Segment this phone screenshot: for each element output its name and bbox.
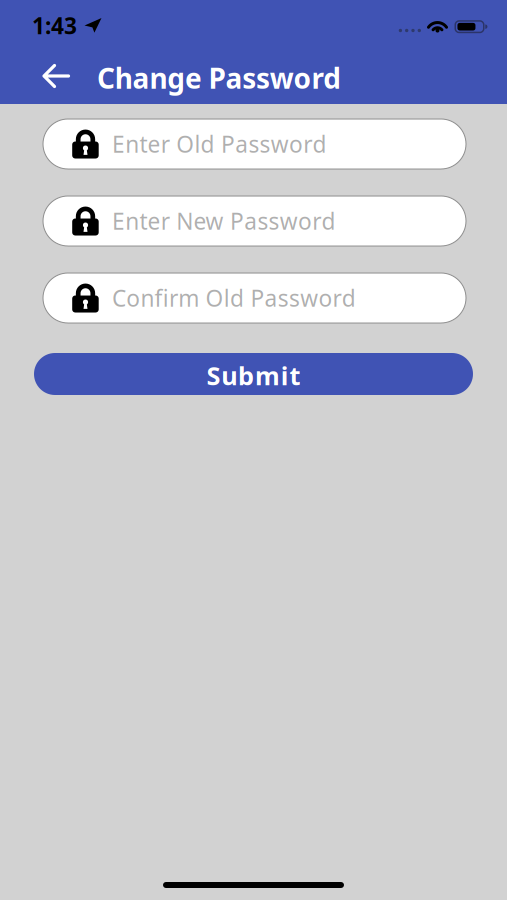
staticText: Enter New Password: [112, 206, 335, 236]
button[interactable]: Confirm Old Password: [43, 273, 466, 323]
button[interactable]: Back: [34, 54, 78, 98]
button[interactable]: Enter Old Password: [43, 119, 466, 169]
button[interactable]: Enter New Password: [43, 196, 466, 246]
staticText: Confirm Old Password: [112, 283, 356, 313]
staticText: Enter Old Password: [112, 129, 326, 159]
staticText: 1:43: [32, 10, 77, 40]
staticText: Change Password: [97, 59, 341, 97]
button[interactable]: Submit: [34, 353, 473, 395]
staticText: Submit: [206, 359, 300, 392]
